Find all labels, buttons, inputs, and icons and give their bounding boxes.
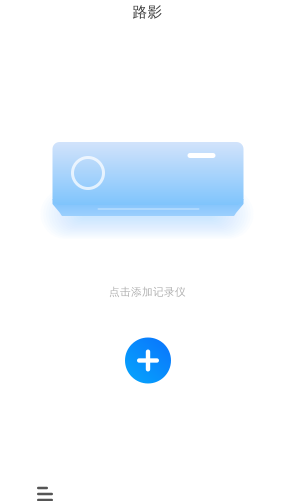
staticText: 点击添加记录仪	[109, 285, 186, 298]
button[interactable]: 添加记录仪	[125, 337, 171, 383]
staticText: 路影	[132, 3, 162, 21]
button[interactable]: 菜单	[37, 487, 53, 501]
